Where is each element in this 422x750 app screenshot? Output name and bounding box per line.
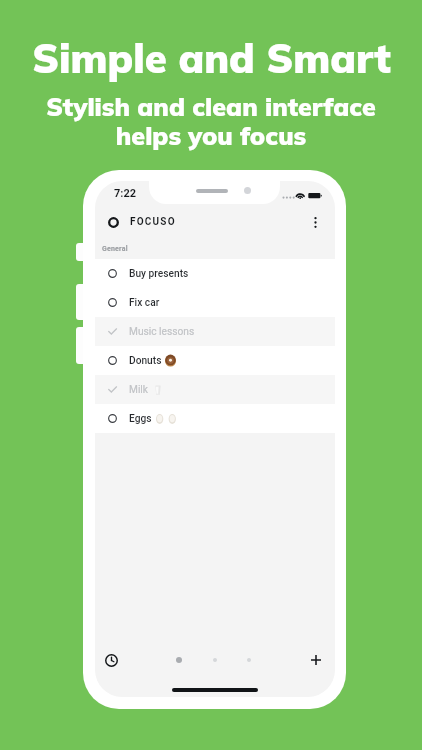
button[interactable]: More options xyxy=(307,214,323,230)
button[interactable]: Buy presents xyxy=(95,259,335,288)
button[interactable]: Milk xyxy=(95,375,335,404)
staticText: 7:22 xyxy=(114,187,137,200)
staticText: Milk xyxy=(129,384,149,396)
button[interactable]: Music lessons xyxy=(95,317,335,346)
staticText: FOCUSO xyxy=(130,216,176,228)
staticText: Eggs xyxy=(129,413,152,425)
staticText: Simple and Smart xyxy=(32,33,391,83)
button[interactable]: Fix car xyxy=(95,288,335,317)
staticText: Donuts xyxy=(129,355,162,367)
button[interactable]: Add task xyxy=(305,649,327,671)
staticText: Fix car xyxy=(129,297,160,309)
staticText: Stylish and clean interface helps you fo… xyxy=(46,91,376,151)
staticText: Music lessons xyxy=(129,326,195,338)
staticText: Buy presents xyxy=(129,268,189,280)
button[interactable]: History xyxy=(100,649,122,671)
staticText: General xyxy=(102,245,128,253)
button[interactable]: Donuts xyxy=(95,346,335,375)
button[interactable]: Eggs xyxy=(95,404,335,433)
